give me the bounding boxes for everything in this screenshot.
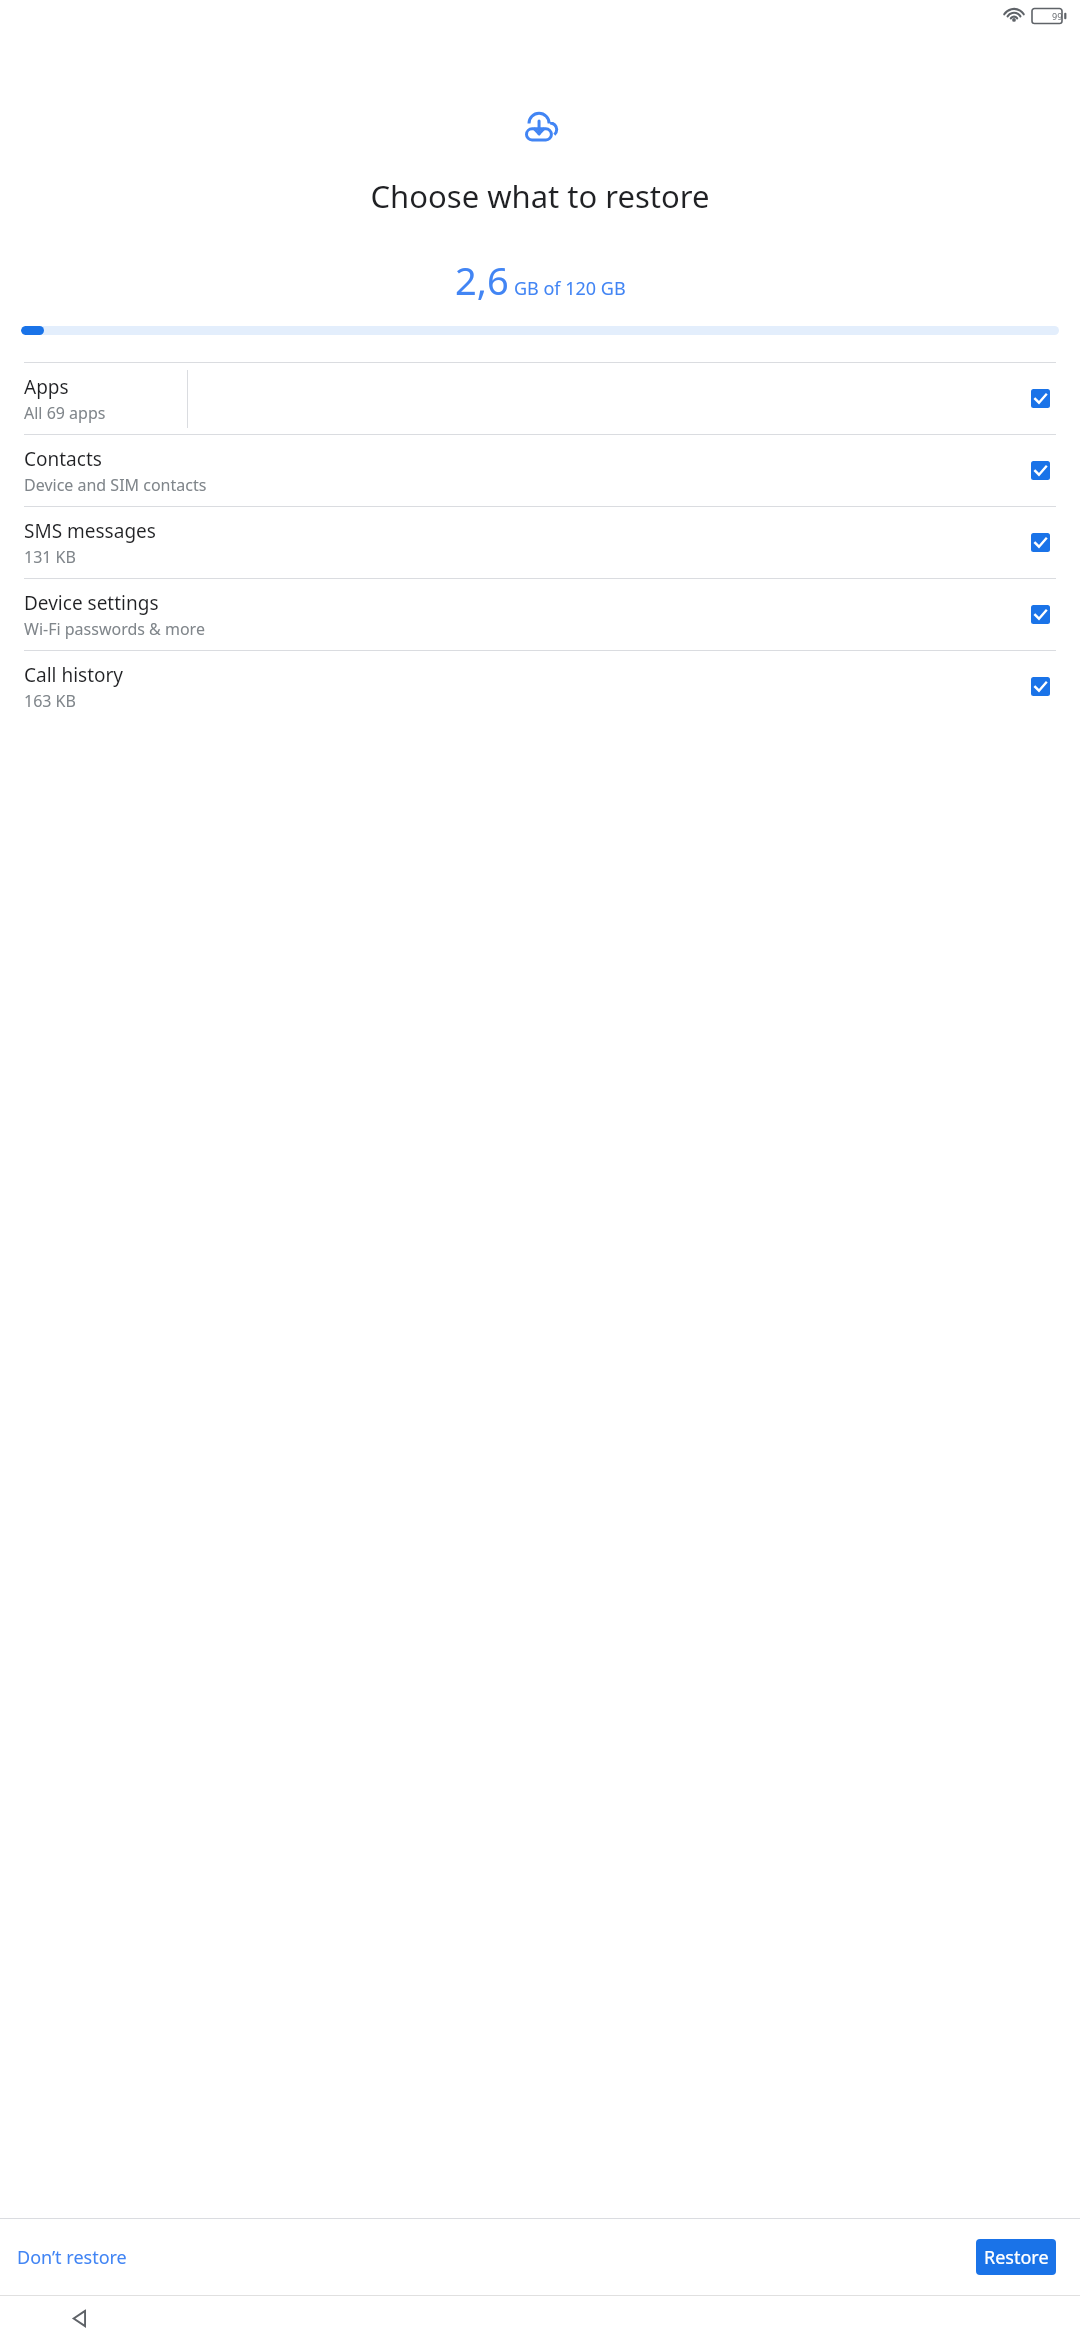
staticText: Call history xyxy=(24,662,124,688)
other: Checked xyxy=(1031,605,1050,624)
button[interactable]: Device settings xyxy=(0,579,1080,650)
staticText: Device settings xyxy=(24,590,159,616)
other: Checked xyxy=(1031,389,1050,408)
staticText: Restore xyxy=(984,2245,1049,2270)
button[interactable]: Call history xyxy=(0,651,1080,722)
other: Checked xyxy=(1031,461,1050,480)
staticText: Don’t restore xyxy=(17,2245,127,2270)
staticText: 2,6 xyxy=(455,254,509,306)
staticText: 131 KB xyxy=(24,546,76,568)
staticText: Wi-Fi passwords & more xyxy=(24,618,205,640)
button[interactable]: Don’t restore xyxy=(9,2237,135,2278)
button[interactable]: Restore xyxy=(976,2239,1056,2275)
staticText: 163 KB xyxy=(24,690,76,712)
button[interactable]: Back xyxy=(60,2298,100,2338)
staticText: GB of 120 GB xyxy=(514,276,626,301)
button[interactable]: Apps xyxy=(0,363,1080,434)
staticText: Choose what to restore xyxy=(0,175,1080,217)
staticText: Contacts xyxy=(24,446,102,472)
other: Checked xyxy=(1031,677,1050,696)
staticText: SMS messages xyxy=(24,518,156,544)
staticText: 99 xyxy=(1052,10,1063,22)
other: Checked xyxy=(1031,533,1050,552)
staticText: Apps xyxy=(24,374,69,400)
button[interactable]: Contacts xyxy=(0,435,1080,506)
staticText: Device and SIM contacts xyxy=(24,474,207,496)
button[interactable]: SMS messages xyxy=(0,507,1080,578)
staticText: All 69 apps xyxy=(24,402,106,424)
